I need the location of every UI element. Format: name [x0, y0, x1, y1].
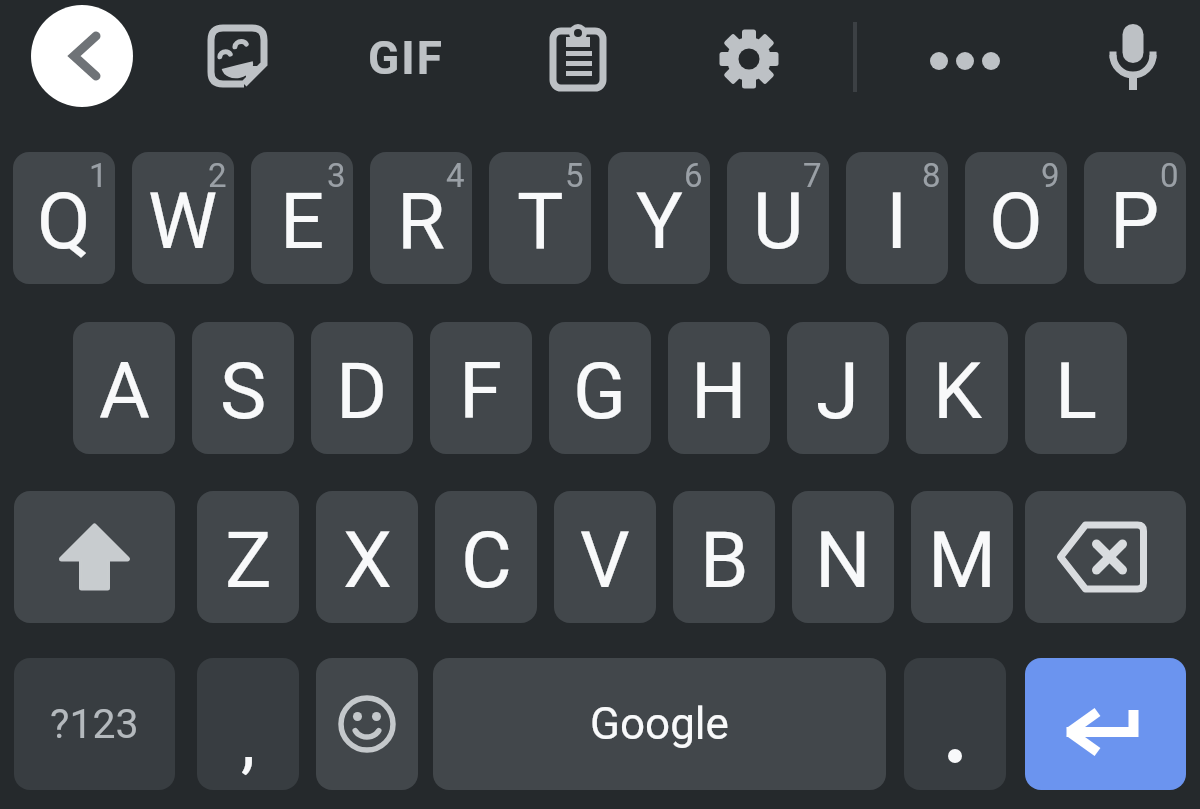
staticText: Y: [636, 176, 683, 267]
staticText: Google: [590, 698, 729, 750]
button[interactable]: O: [965, 152, 1067, 284]
button[interactable]: [1025, 491, 1186, 623]
button[interactable]: J: [787, 322, 889, 454]
staticText: 3: [327, 156, 346, 195]
staticText: GIF: [368, 31, 444, 85]
button[interactable]: [929, 25, 1001, 97]
button[interactable]: [904, 658, 1006, 790]
staticText: K: [933, 346, 982, 437]
button[interactable]: [31, 5, 133, 107]
staticText: T: [517, 176, 564, 267]
staticText: J: [816, 346, 860, 437]
button[interactable]: R: [370, 152, 472, 284]
button[interactable]: [712, 22, 784, 94]
button[interactable]: Y: [608, 152, 710, 284]
staticText: O: [989, 176, 1043, 267]
staticText: 1: [89, 156, 108, 195]
staticText: R: [397, 176, 446, 267]
staticText: 4: [446, 156, 465, 195]
button[interactable]: V: [554, 491, 656, 623]
button[interactable]: K: [906, 322, 1008, 454]
staticText: 8: [922, 156, 941, 195]
staticText: 7: [803, 156, 822, 195]
staticText: G: [573, 346, 627, 437]
button[interactable]: C: [435, 491, 537, 623]
button[interactable]: X: [316, 491, 418, 623]
staticText: M: [928, 515, 997, 606]
button[interactable]: [201, 22, 273, 94]
staticText: H: [691, 346, 747, 437]
staticText: D: [336, 346, 388, 437]
button[interactable]: I: [846, 152, 948, 284]
button[interactable]: E: [251, 152, 353, 284]
button[interactable]: A: [73, 322, 175, 454]
button[interactable]: Z: [197, 491, 299, 623]
staticText: ,: [241, 698, 256, 782]
button[interactable]: N: [792, 491, 894, 623]
button[interactable]: B: [673, 491, 775, 623]
staticText: P: [1110, 176, 1160, 267]
staticText: W: [148, 176, 218, 267]
button[interactable]: [14, 491, 175, 623]
staticText: F: [459, 346, 503, 437]
button[interactable]: H: [668, 322, 770, 454]
button[interactable]: D: [311, 322, 413, 454]
staticText: V: [580, 515, 630, 606]
staticText: 5: [565, 156, 584, 195]
staticText: Q: [37, 176, 91, 267]
button[interactable]: T: [489, 152, 591, 284]
staticText: E: [280, 176, 325, 267]
button[interactable]: F: [430, 322, 532, 454]
button[interactable]: [316, 658, 418, 790]
button[interactable]: G: [549, 322, 651, 454]
button[interactable]: GIF: [363, 22, 449, 94]
staticText: C: [461, 515, 512, 606]
staticText: I: [886, 176, 908, 267]
button[interactable]: ,: [197, 658, 299, 790]
staticText: B: [700, 515, 749, 606]
staticText: U: [753, 176, 804, 267]
staticText: 2: [208, 156, 227, 195]
button[interactable]: W: [132, 152, 234, 284]
button[interactable]: L: [1025, 322, 1127, 454]
button[interactable]: Google: [433, 658, 886, 790]
staticText: 6: [684, 156, 703, 195]
staticText: Z: [225, 515, 272, 606]
button[interactable]: M: [911, 491, 1013, 623]
button[interactable]: [1097, 18, 1169, 98]
button[interactable]: Q: [13, 152, 115, 284]
button[interactable]: ?123: [14, 658, 175, 790]
staticText: ?123: [50, 700, 139, 748]
staticText: S: [220, 346, 267, 437]
button[interactable]: U: [727, 152, 829, 284]
staticText: X: [343, 515, 392, 606]
button[interactable]: P: [1084, 152, 1186, 284]
staticText: 9: [1041, 156, 1060, 195]
button[interactable]: S: [192, 322, 294, 454]
staticText: L: [1055, 346, 1098, 437]
staticText: 0: [1160, 156, 1179, 195]
button[interactable]: [542, 20, 614, 92]
button[interactable]: [1025, 658, 1186, 790]
staticText: A: [99, 346, 150, 437]
staticText: N: [815, 515, 871, 606]
